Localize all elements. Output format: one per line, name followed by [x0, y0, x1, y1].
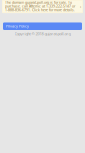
staticText: The domain gujarat-poll.org is for sale.…	[5, 1, 75, 12]
staticText: Privacy Policy	[6, 24, 29, 28]
staticText: Copyright © 2018 gujarat-poll.org	[14, 31, 70, 36]
staticText: ›	[80, 4, 81, 9]
button[interactable]: The domain gujarat-poll.org is for sale.…	[2, 0, 83, 13]
button[interactable]: Privacy Policy	[3, 22, 82, 30]
